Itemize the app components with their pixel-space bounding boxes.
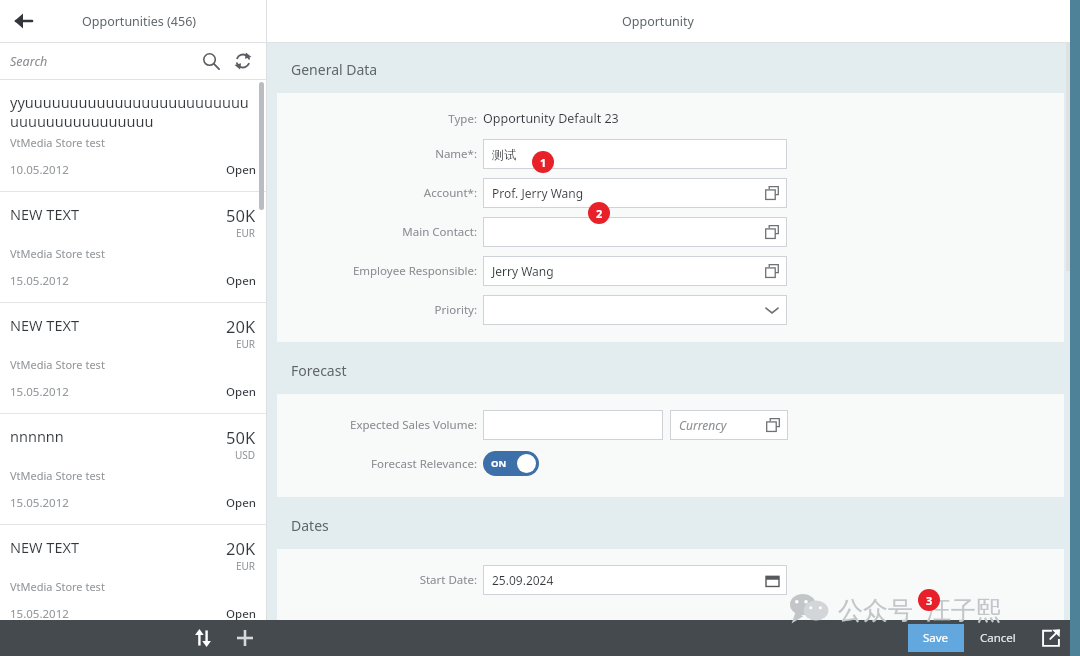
staticText: Opportunities (456) — [82, 13, 197, 30]
staticText: Open — [226, 495, 256, 511]
staticText: EUR — [236, 559, 256, 573]
staticText: 20K — [226, 315, 256, 337]
button[interactable]: Add — [228, 621, 262, 655]
button[interactable]: Sort — [186, 621, 220, 655]
staticText: Save — [923, 630, 949, 646]
staticText: 50K — [226, 204, 256, 226]
staticText: EUR — [236, 226, 256, 240]
staticText: 15.05.2012 — [10, 384, 69, 400]
staticText: 25.09.2024 — [492, 572, 554, 588]
staticText: Jerry Wang — [492, 263, 554, 279]
staticText: Open — [226, 384, 256, 400]
staticText: 公众号 汪子熙 — [838, 592, 1002, 626]
staticText: 15.05.2012 — [10, 273, 69, 289]
staticText: Currency — [679, 417, 727, 433]
staticText: Start Date: — [419, 572, 477, 588]
staticText: NEW TEXT — [10, 204, 220, 224]
button[interactable]: Save — [908, 624, 964, 652]
staticText: Dates — [291, 516, 329, 535]
staticText: Account*: — [423, 185, 477, 201]
staticText: 15.05.2012 — [10, 606, 69, 622]
staticText: Search — [10, 53, 48, 70]
button[interactable]: Currency — [670, 410, 788, 440]
staticText: NEW TEXT — [10, 315, 220, 335]
staticText: VtMedia Store test — [10, 357, 105, 372]
staticText: Forecast Relevance: — [371, 456, 477, 472]
staticText: VtMedia Store test — [10, 135, 105, 150]
staticText: Open — [226, 606, 256, 622]
staticText: Opportunity Default 23 — [483, 110, 619, 127]
button[interactable]: yyuuuuuuuuuuuuuuuuuuuuuuuuuuuuuuuuuuuuuu… — [0, 80, 266, 192]
staticText: Open — [226, 273, 256, 289]
staticText: Priority: — [434, 302, 477, 318]
button[interactable]: Back — [6, 4, 40, 38]
button[interactable]: nnnnnn — [0, 414, 266, 525]
staticText: nnnnnn — [10, 426, 220, 446]
staticText: VtMedia Store test — [10, 246, 105, 261]
button[interactable]: NEW TEXT — [0, 303, 266, 414]
staticText: Open — [226, 162, 256, 178]
staticText: Name*: — [435, 146, 477, 162]
button[interactable]: NEW TEXT — [0, 525, 266, 636]
staticText: 2 — [596, 206, 603, 221]
staticText: Prof. Jerry Wang — [492, 185, 584, 201]
button[interactable]: NEW TEXT — [0, 192, 266, 303]
button[interactable]: Refresh — [228, 46, 258, 76]
button[interactable] — [483, 295, 787, 325]
staticText: VtMedia Store test — [10, 579, 105, 594]
button[interactable] — [483, 410, 663, 440]
staticText: Opportunity — [622, 13, 694, 30]
button[interactable]: Search — [0, 43, 266, 79]
staticText: yyuuuuuuuuuuuuuuuuuuuuuuuuuuuuuuuuuuuuuu… — [10, 92, 250, 131]
staticText: NEW TEXT — [10, 537, 220, 557]
button[interactable]: Prof. Jerry Wang — [483, 178, 787, 208]
button[interactable]: Cancel — [980, 624, 1016, 652]
staticText: General Data — [291, 60, 378, 79]
staticText: ON — [491, 457, 507, 470]
staticText: 3 — [926, 593, 933, 608]
staticText: 10.05.2012 — [10, 162, 69, 178]
staticText: Type: — [448, 111, 477, 127]
staticText: Main Contact: — [402, 224, 477, 240]
button[interactable]: Share — [1036, 623, 1066, 653]
button[interactable]: Search — [196, 46, 226, 76]
staticText: 50K — [226, 426, 256, 448]
staticText: 测试 — [492, 147, 516, 162]
staticText: Forecast — [291, 361, 347, 380]
staticText: Employee Responsible: — [352, 263, 477, 279]
staticText: Cancel — [980, 630, 1016, 646]
button[interactable]: Forecast relevance, on — [483, 451, 539, 476]
staticText: 20K — [226, 537, 256, 559]
staticText: Expected Sales Volume: — [350, 417, 477, 433]
staticText: 1 — [540, 155, 547, 170]
button[interactable] — [483, 217, 787, 247]
button[interactable]: 测试 — [483, 139, 787, 169]
staticText: VtMedia Store test — [10, 468, 105, 483]
staticText: EUR — [236, 337, 256, 351]
button[interactable]: 25.09.2024 — [483, 565, 787, 595]
button[interactable]: Jerry Wang — [483, 256, 787, 286]
staticText: 15.05.2012 — [10, 495, 69, 511]
staticText: USD — [235, 448, 256, 462]
